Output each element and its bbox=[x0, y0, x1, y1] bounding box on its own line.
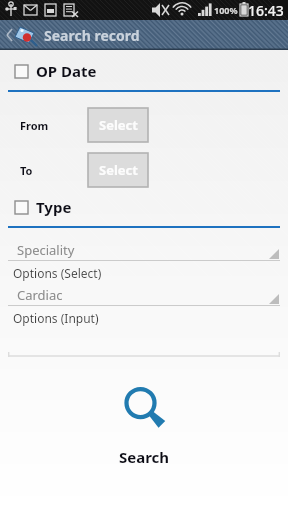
button[interactable]: Options input bbox=[8, 341, 280, 357]
button[interactable]: Speciality bbox=[8, 239, 280, 261]
staticText: OP Date bbox=[36, 61, 97, 81]
staticText: Select bbox=[99, 161, 138, 179]
staticText: Options (Input) bbox=[13, 310, 99, 326]
button[interactable]: Cardiac bbox=[8, 284, 280, 306]
staticText: 16:43 bbox=[248, 1, 284, 20]
staticText: 100% bbox=[214, 4, 238, 16]
staticText: Cardiac bbox=[17, 286, 63, 304]
button[interactable]: OP Date checkbox bbox=[0, 61, 288, 92]
staticText: To bbox=[20, 163, 33, 178]
staticText: Type bbox=[36, 197, 72, 217]
button[interactable]: Select bbox=[88, 108, 148, 142]
button[interactable]: Search bbox=[0, 383, 288, 467]
staticText: Options (Select) bbox=[13, 265, 102, 281]
button[interactable]: Type checkbox bbox=[0, 197, 288, 228]
staticText: From bbox=[20, 118, 49, 133]
staticText: Select bbox=[99, 116, 138, 134]
staticText: Speciality bbox=[17, 241, 75, 259]
staticText: Search bbox=[119, 447, 170, 467]
button[interactable]: Select bbox=[88, 153, 148, 187]
staticText: Search record bbox=[44, 26, 140, 45]
